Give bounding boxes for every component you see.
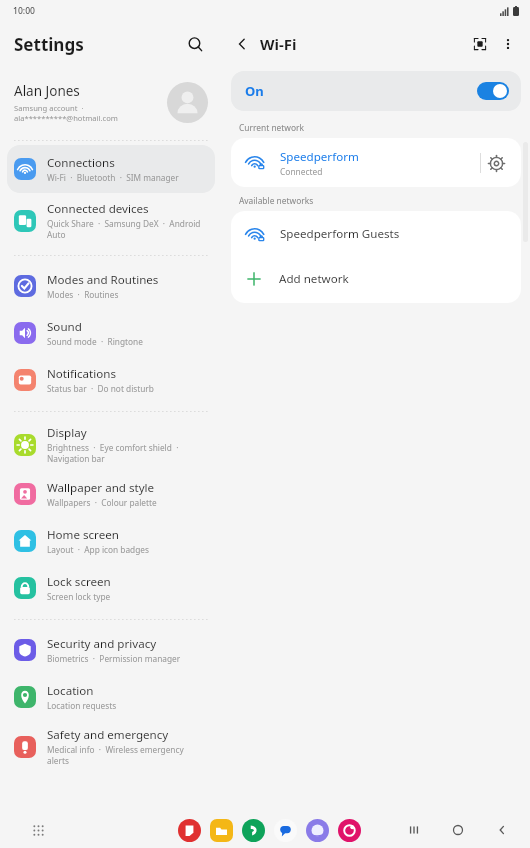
staticText: Modes · Routines [47,289,119,300]
staticText: Medical info · Wireless emergency alerts [47,744,184,766]
staticText: Sound [47,319,82,335]
staticText: Wallpaper and style [47,480,155,496]
button[interactable]: App [242,819,265,842]
button[interactable]: App [338,819,361,842]
button[interactable]: Back [488,816,516,844]
button[interactable]: Speedperform [231,138,521,187]
button[interactable]: Notifications [7,356,215,403]
button[interactable]: Display [7,418,215,470]
staticText: Sound mode · Ringtone [47,336,143,347]
button[interactable]: Back [228,30,256,58]
staticText: Samsung account · [14,103,84,113]
staticText: Connected [280,166,323,177]
staticText: Location requests [47,700,117,711]
staticText: On [245,82,264,100]
staticText: Home screen [47,527,119,543]
button[interactable]: Security and privacy [7,626,215,673]
button[interactable]: Alan Jones [0,66,222,138]
staticText: Add network [279,271,349,287]
button[interactable]: Sound [7,309,215,356]
button[interactable]: Home screen [7,517,215,564]
button[interactable]: Modes and Routines [7,262,215,309]
button[interactable]: App [178,819,201,842]
button[interactable]: App [210,819,233,842]
staticText: Notifications [47,366,116,382]
staticText: Settings [14,33,84,56]
button[interactable]: Location [7,673,215,720]
button[interactable]: Speedperform Guests [231,211,521,257]
staticText: Biometrics · Permission manager [47,653,181,664]
button[interactable]: Lock screen [7,564,215,611]
button[interactable]: Add network [231,257,521,301]
staticText: Layout · App icon badges [47,544,149,555]
staticText: Modes and Routines [47,272,159,288]
button[interactable]: App [306,819,329,842]
staticText: Status bar · Do not disturb [47,383,154,394]
staticText: Current network [239,122,304,133]
staticText: Wallpapers · Colour palette [47,497,157,508]
staticText: Screen lock type [47,591,111,602]
staticText: Alan Jones [14,82,80,100]
button[interactable]: Scan QR code [466,30,494,58]
staticText: Connected devices [47,201,149,217]
staticText: Security and privacy [47,636,157,652]
button[interactable]: Search [180,29,210,59]
staticText: Speedperform [280,149,359,165]
button[interactable]: Recents [400,816,428,844]
staticText: Lock screen [47,574,111,590]
staticText: ala**********@hotmail.com [14,113,118,123]
staticText: Speedperform Guests [280,226,400,242]
button[interactable]: Safety and emergency [7,720,215,772]
button[interactable]: App [274,819,297,842]
button[interactable]: Network settings [481,148,511,178]
button[interactable]: On [231,71,521,111]
button[interactable]: Connected devices [7,193,215,247]
staticText: Wi-Fi [260,34,297,54]
staticText: Quick Share · Samsung DeX · Android Auto [47,218,201,240]
staticText: Display [47,425,87,441]
staticText: Safety and emergency [47,727,169,743]
staticText: Wi-Fi · Bluetooth · SIM manager [47,172,179,183]
button[interactable]: Wallpaper and style [7,470,215,517]
staticText: Brightness · Eye comfort shield · Naviga… [47,442,179,464]
button[interactable]: More options [494,30,522,58]
button[interactable]: Home [444,816,472,844]
staticText: Available networks [239,195,314,206]
staticText: 10:00 [13,5,36,17]
staticText: Location [47,683,94,699]
button[interactable]: Apps [26,818,50,842]
staticText: Connections [47,155,115,171]
button[interactable]: Connections [7,145,215,193]
